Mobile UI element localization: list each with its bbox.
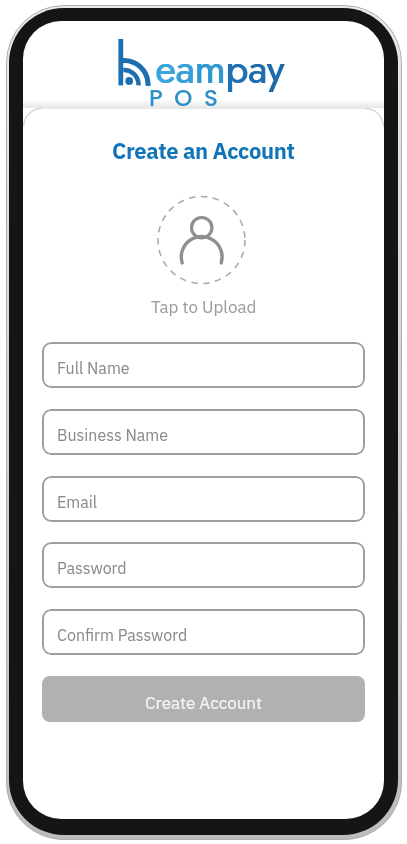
staticText: P O S [149,82,221,114]
staticText: Create Account [145,691,262,716]
button[interactable]: Password [42,542,365,588]
staticText: Full Name [57,357,130,381]
staticText: Create an Account [112,135,295,168]
button[interactable]: Create Account [42,676,365,722]
button[interactable]: Full Name [42,342,365,388]
button[interactable]: Business Name [42,409,365,455]
staticText: Password [57,557,127,581]
staticText: eampay [155,41,284,98]
staticText: eampay [156,41,285,98]
button[interactable]: Email [42,476,365,522]
button[interactable]: Confirm Password [42,609,365,655]
button[interactable] [158,196,246,284]
staticText: Confirm Password [57,624,188,648]
staticText: Tap to Upload [151,295,257,320]
staticText: Email [57,491,98,515]
staticText: Business Name [57,424,169,448]
